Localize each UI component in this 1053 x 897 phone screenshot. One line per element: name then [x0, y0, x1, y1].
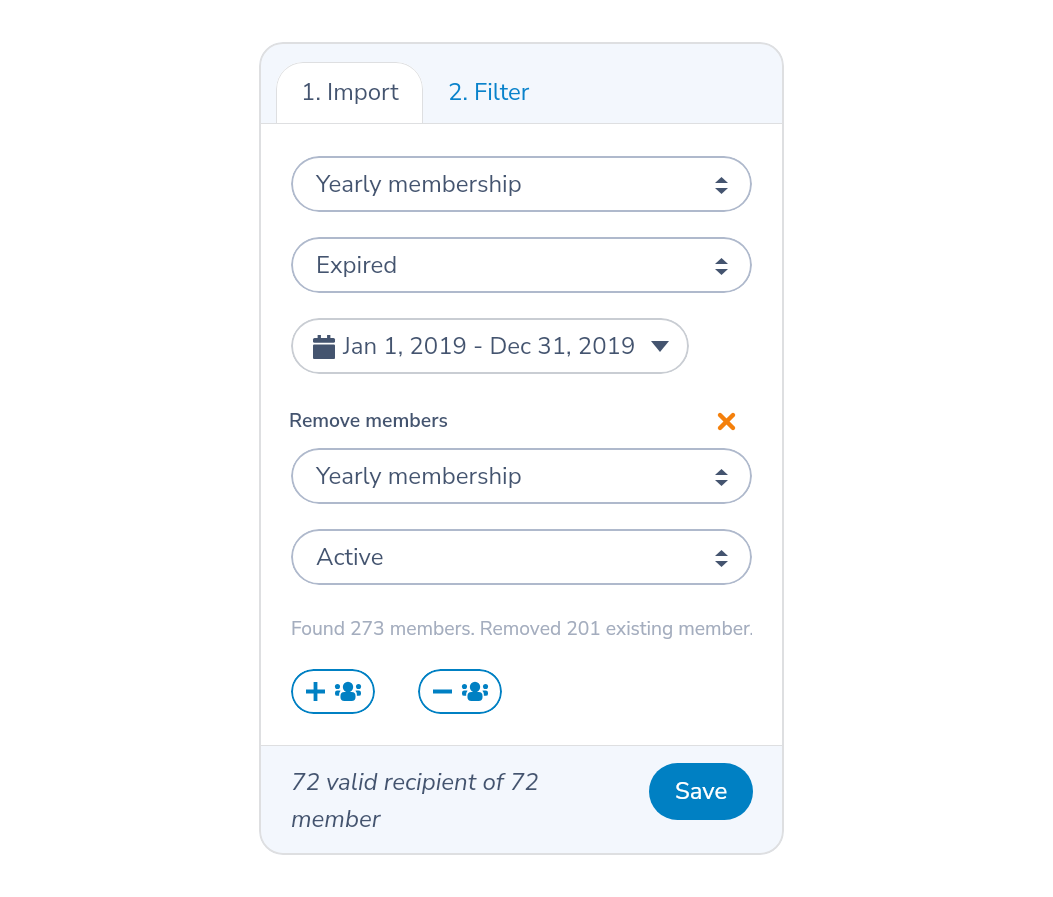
staticText: Expired: [316, 249, 398, 282]
button[interactable]: Jan 1, 2019 - Dec 31, 2019: [291, 318, 689, 374]
button[interactable]: Add members: [291, 669, 375, 714]
staticText: Found 273 members. Removed 201 existing …: [291, 615, 752, 641]
staticText: Save: [675, 775, 728, 808]
staticText: 1. Import: [301, 76, 399, 109]
staticText: Remove members: [289, 407, 448, 433]
button[interactable]: Yearly membership: [291, 156, 752, 212]
button[interactable]: Expired: [291, 237, 752, 293]
staticText: Jan 1, 2019 - Dec 31, 2019: [343, 330, 636, 363]
button[interactable]: Yearly membership: [291, 448, 752, 504]
button[interactable]: Remove this rule: [709, 406, 743, 436]
staticText: 72 valid recipient of 72 member: [291, 766, 546, 835]
button[interactable]: 1. Import: [276, 62, 423, 124]
staticText: Yearly membership: [316, 168, 522, 201]
button[interactable]: 2. Filter: [423, 62, 554, 124]
staticText: Active: [316, 541, 384, 574]
button[interactable]: Active: [291, 529, 752, 585]
button[interactable]: Save: [649, 763, 753, 820]
button[interactable]: Remove members: [418, 669, 502, 714]
staticText: Yearly membership: [316, 460, 522, 493]
staticText: 2. Filter: [448, 76, 530, 109]
